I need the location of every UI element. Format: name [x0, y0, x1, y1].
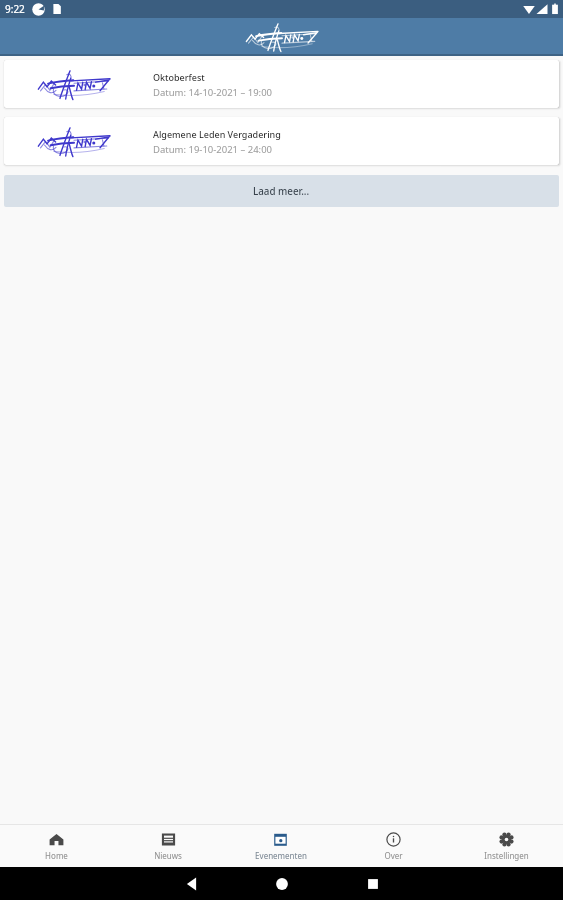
staticText: Oktoberfest [153, 71, 205, 83]
button[interactable]: Home [0, 825, 112, 867]
staticText: Datum: 14-10-2021 – 19:00 [153, 86, 273, 99]
button[interactable]: Recent apps [360, 871, 386, 897]
button[interactable]: Oktoberfest [4, 60, 559, 108]
staticText: Nieuws [154, 850, 182, 861]
staticText: 9:22 [5, 2, 25, 16]
button[interactable]: Algemene Leden Vergadering [4, 117, 559, 165]
staticText: Laad meer... [253, 185, 310, 198]
button[interactable]: Evenementen [224, 825, 337, 867]
staticText: Over [384, 850, 403, 861]
button[interactable]: Over [337, 825, 450, 867]
button[interactable]: Back [178, 871, 204, 897]
staticText: Home [45, 850, 68, 861]
staticText: Algemene Leden Vergadering [153, 128, 281, 140]
button[interactable]: Nieuws [112, 825, 224, 867]
staticText: Evenementen [255, 850, 307, 861]
staticText: Datum: 19-10-2021 – 24:00 [153, 143, 273, 156]
staticText: Instellingen [484, 850, 529, 861]
button[interactable]: Instellingen [450, 825, 563, 867]
button[interactable]: Laad meer... [4, 175, 559, 207]
button[interactable]: Home [269, 871, 295, 897]
